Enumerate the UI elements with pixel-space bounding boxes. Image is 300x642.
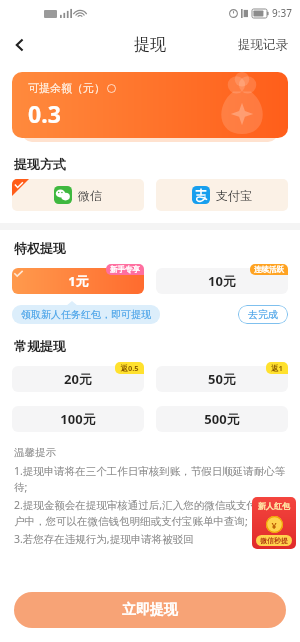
button[interactable]: 50元: [156, 366, 288, 392]
staticText: 9:37: [272, 6, 292, 20]
staticText: 1元: [68, 272, 89, 290]
staticText: 500元: [204, 410, 240, 428]
button[interactable]: 立即提现: [14, 592, 286, 628]
staticText: 温馨提示: [14, 446, 56, 459]
staticText: 领取新人任务红包，即可提现: [21, 308, 151, 321]
staticText: ¥: [271, 519, 277, 531]
staticText: 提现: [134, 35, 166, 55]
staticText: 提现方式: [14, 156, 66, 172]
button[interactable]: 100元: [12, 406, 144, 432]
staticText: 微信: [78, 188, 102, 203]
staticText: 返0.5: [120, 363, 139, 373]
button[interactable]: 支付宝: [156, 179, 288, 211]
staticText: 新人红包: [258, 501, 290, 511]
button[interactable]: 可提余额（元）: [12, 72, 288, 138]
staticText: 新手专享: [110, 265, 140, 274]
staticText: 0.3: [28, 98, 61, 129]
button[interactable]: 领取新人任务红包，即可提现: [12, 305, 160, 324]
staticText: 1.提现申请将在三个工作日审核到账，节假日顺延请耐心等待;: [14, 464, 286, 494]
staticText: 特权提现: [14, 240, 66, 256]
button[interactable]: 500元: [156, 406, 288, 432]
staticText: 立即提现: [122, 601, 178, 619]
staticText: 20元: [64, 370, 92, 388]
staticText: 去完成: [248, 308, 278, 321]
button[interactable]: 20元: [12, 366, 144, 392]
staticText: 2.提现金额会在提现审核通过后,汇入您的微信或支付宝账户中，您可以在微信钱包明细…: [14, 498, 286, 528]
staticText: 支付宝: [216, 188, 252, 203]
button[interactable]: 新人红包 微信秒提: [252, 497, 296, 549]
staticText: 10元: [208, 272, 236, 290]
button[interactable]: 返回: [0, 26, 40, 64]
staticText: 50元: [208, 370, 236, 388]
staticText: 提现记录: [238, 37, 288, 53]
button[interactable]: 10元: [156, 268, 288, 294]
staticText: 可提余额（元）: [28, 81, 105, 95]
staticText: 微信秒提: [260, 536, 288, 545]
staticText: 100元: [60, 410, 96, 428]
button[interactable]: 提现记录: [236, 31, 290, 59]
staticText: 常规提现: [14, 338, 66, 354]
button[interactable]: 微信: [12, 179, 144, 211]
staticText: 3.若您存在违规行为,提现申请将被驳回: [14, 532, 194, 546]
button[interactable]: 1元: [12, 268, 144, 294]
button[interactable]: 去完成: [238, 305, 288, 324]
staticText: 连续活跃: [254, 265, 284, 274]
staticText: 返1: [271, 363, 283, 373]
